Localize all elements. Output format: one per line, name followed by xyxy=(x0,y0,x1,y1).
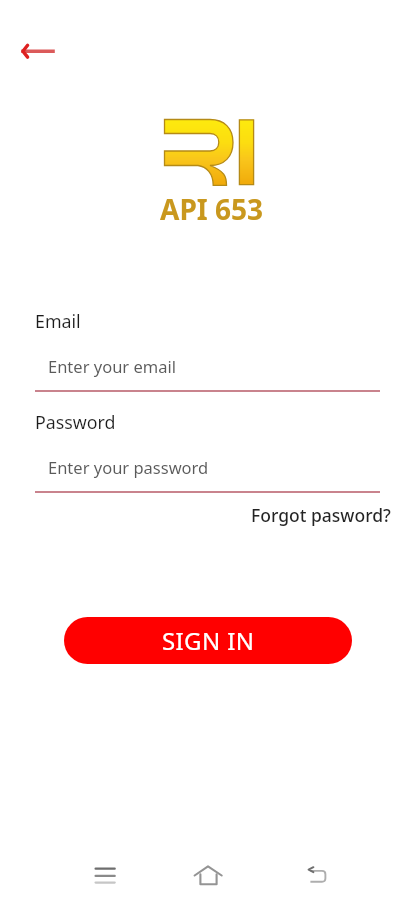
staticText: Enter your email xyxy=(48,355,176,377)
staticText: Email xyxy=(35,309,81,333)
staticText: Password xyxy=(35,410,116,434)
staticText: API 653 xyxy=(160,190,263,228)
staticText: Enter your password xyxy=(48,456,209,478)
button[interactable]: Home xyxy=(186,855,230,899)
button[interactable]: Back xyxy=(295,855,339,899)
staticText: SIGN IN xyxy=(162,624,255,657)
button[interactable]: Back xyxy=(12,33,60,69)
button[interactable]: SIGN IN xyxy=(64,617,352,664)
button[interactable]: Recent apps xyxy=(83,855,127,899)
button[interactable]: Forgot pasword? xyxy=(251,503,391,527)
